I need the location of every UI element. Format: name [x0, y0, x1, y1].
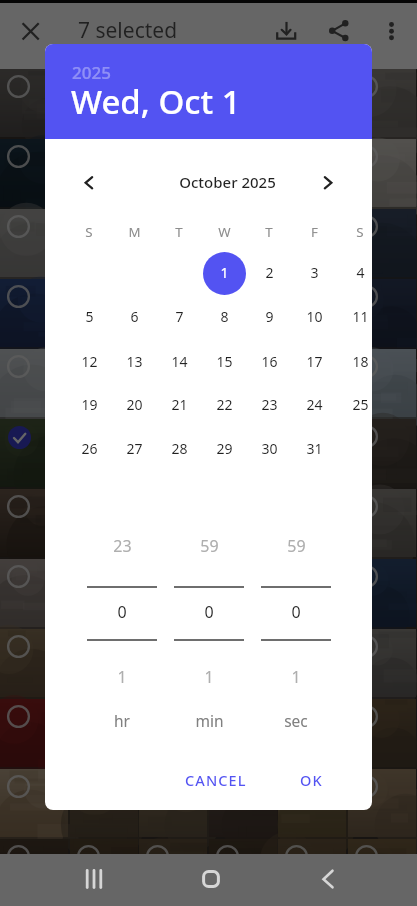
button[interactable] [139, 699, 207, 767]
button[interactable] [139, 559, 207, 627]
button[interactable] [209, 559, 277, 627]
staticText: 5 [85, 307, 94, 326]
button[interactable] [70, 839, 138, 906]
staticText: 8 [220, 307, 229, 326]
staticText: 30 [261, 439, 278, 458]
button[interactable]: More options [376, 15, 409, 48]
button[interactable] [278, 839, 346, 906]
button[interactable] [209, 139, 277, 207]
button[interactable] [278, 699, 346, 767]
button[interactable] [348, 559, 416, 627]
button[interactable] [209, 419, 277, 487]
button[interactable]: Back [308, 859, 348, 899]
button[interactable] [209, 839, 277, 906]
button[interactable] [139, 279, 207, 347]
button[interactable] [278, 629, 346, 697]
button[interactable]: Home [191, 859, 231, 899]
button[interactable] [209, 209, 277, 277]
button[interactable] [139, 629, 207, 697]
staticText: OK [300, 770, 323, 790]
button[interactable] [278, 139, 346, 207]
staticText: 4 [356, 263, 365, 282]
button[interactable] [348, 839, 416, 906]
staticText: 7 [175, 307, 184, 326]
button[interactable] [139, 209, 207, 277]
staticText: 13 [126, 352, 143, 371]
button[interactable]: Previous month [73, 167, 105, 199]
button[interactable] [0, 139, 68, 207]
staticText: 25 [352, 395, 369, 414]
staticText: 26 [81, 439, 98, 458]
button[interactable] [139, 69, 207, 137]
button[interactable] [70, 419, 138, 487]
button[interactable] [348, 769, 416, 837]
button[interactable] [278, 769, 346, 837]
button[interactable] [70, 559, 138, 627]
button[interactable] [209, 629, 277, 697]
staticText: 2 [265, 263, 274, 282]
button[interactable] [70, 209, 138, 277]
button[interactable] [209, 69, 277, 137]
button[interactable] [348, 139, 416, 207]
button[interactable] [70, 69, 138, 137]
button[interactable] [70, 699, 138, 767]
button[interactable] [139, 489, 207, 557]
button[interactable] [139, 349, 207, 417]
button[interactable] [348, 629, 416, 697]
button[interactable]: CANCEL [170, 762, 262, 798]
button[interactable] [0, 839, 68, 906]
staticText: 9 [265, 307, 274, 326]
button[interactable]: Next month [312, 167, 344, 199]
button[interactable]: Share [322, 15, 355, 48]
button[interactable] [70, 769, 138, 837]
button[interactable] [278, 419, 346, 487]
staticText: 28 [171, 439, 188, 458]
button[interactable] [348, 699, 416, 767]
button[interactable] [348, 349, 416, 417]
button[interactable] [209, 349, 277, 417]
button[interactable] [0, 209, 68, 277]
button[interactable] [203, 252, 246, 295]
staticText: 11 [352, 307, 369, 326]
button[interactable]: OK [281, 762, 341, 798]
button[interactable] [209, 279, 277, 347]
button[interactable] [0, 489, 68, 557]
button[interactable] [70, 139, 138, 207]
button[interactable] [0, 559, 68, 627]
button[interactable] [139, 139, 207, 207]
button[interactable] [139, 769, 207, 837]
button[interactable]: Recent apps [74, 859, 114, 899]
button[interactable] [348, 209, 416, 277]
button[interactable] [278, 559, 346, 627]
button[interactable] [278, 349, 346, 417]
button[interactable] [278, 279, 346, 347]
button[interactable] [0, 699, 68, 767]
button[interactable]: Download [270, 15, 303, 48]
button[interactable] [70, 349, 138, 417]
button[interactable] [0, 279, 68, 347]
button[interactable] [348, 419, 416, 487]
button[interactable] [0, 69, 68, 137]
button[interactable] [209, 699, 277, 767]
button[interactable] [348, 279, 416, 347]
button[interactable] [70, 629, 138, 697]
staticText: October 2025 [179, 172, 276, 192]
button[interactable] [209, 769, 277, 837]
button[interactable] [0, 629, 68, 697]
button[interactable] [0, 419, 68, 487]
button[interactable] [0, 769, 68, 837]
staticText: 1 [117, 666, 127, 688]
button[interactable] [70, 279, 138, 347]
button[interactable] [348, 489, 416, 557]
button[interactable] [70, 489, 138, 557]
button[interactable]: Close [14, 15, 47, 48]
button[interactable] [209, 489, 277, 557]
button[interactable]: 2025 [45, 44, 372, 139]
button[interactable] [139, 839, 207, 906]
button[interactable] [0, 349, 68, 417]
button[interactable] [139, 419, 207, 487]
button[interactable] [348, 69, 416, 137]
button[interactable] [278, 489, 346, 557]
button[interactable] [278, 209, 346, 277]
